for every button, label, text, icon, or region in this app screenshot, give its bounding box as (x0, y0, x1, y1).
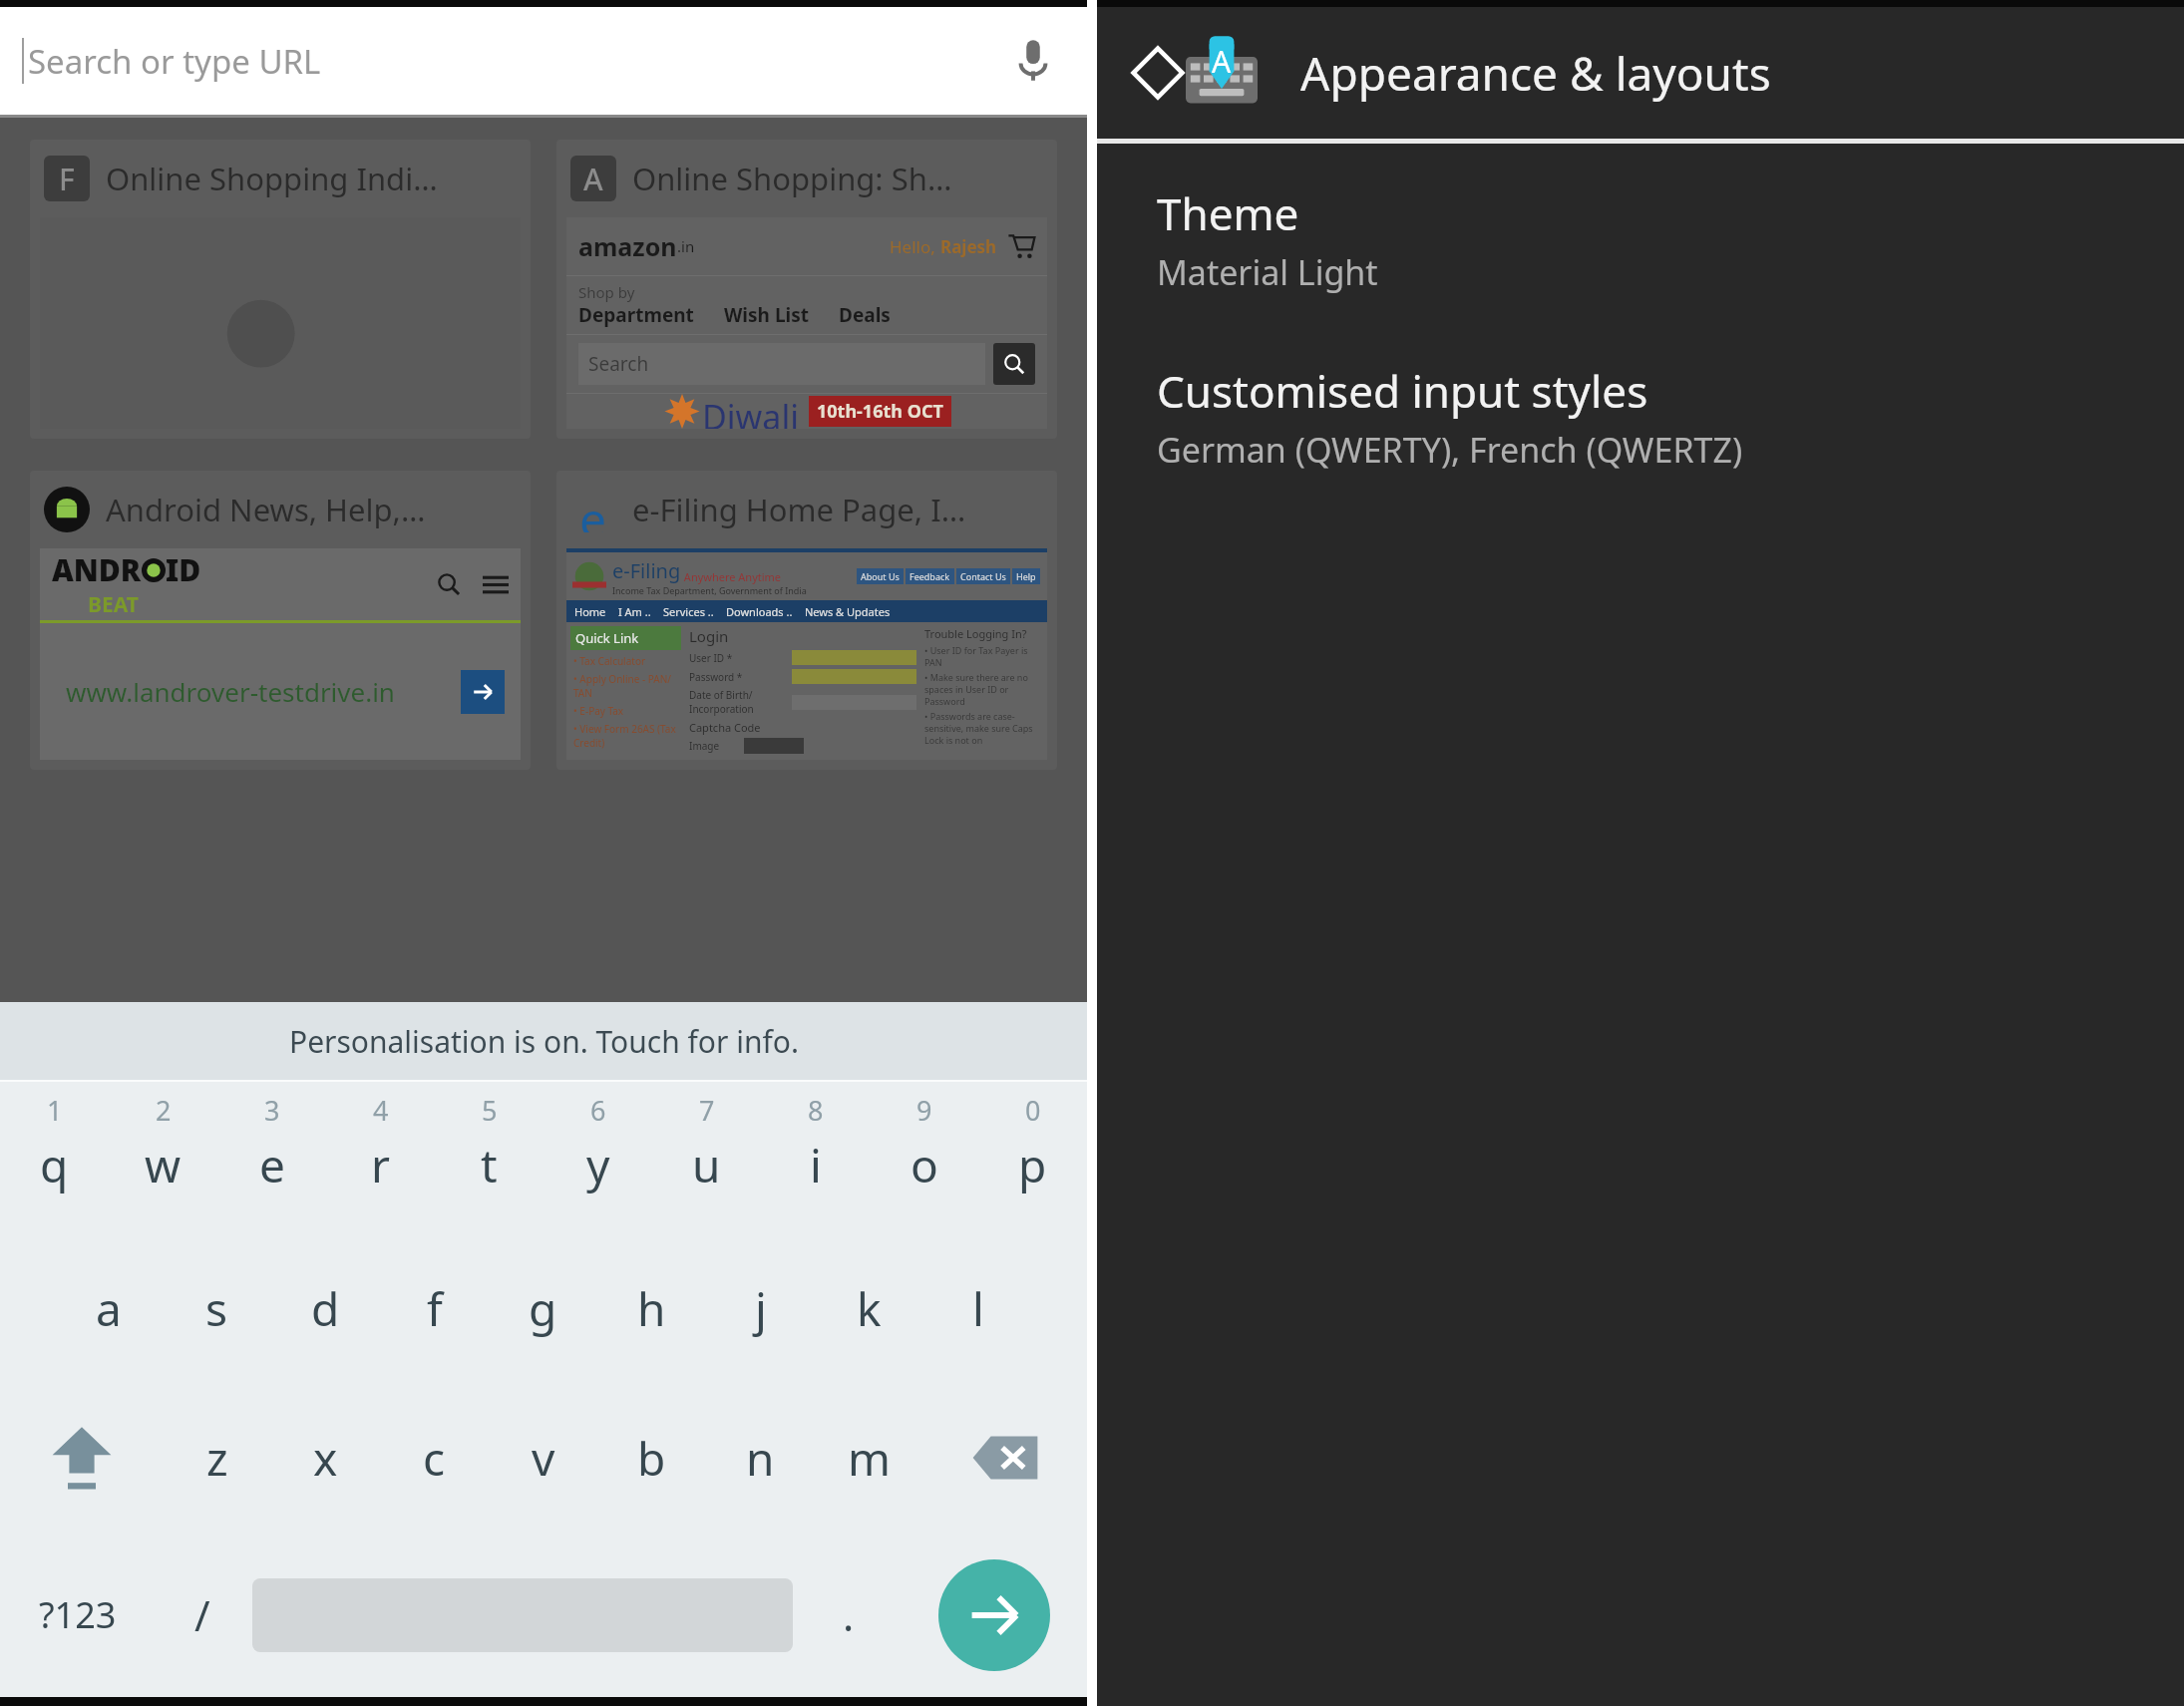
staticText: e-Filing (612, 557, 681, 584)
staticText: ?123 (39, 1590, 117, 1639)
button[interactable]: A (556, 140, 1057, 439)
button[interactable]: 7 (652, 1082, 761, 1233)
button[interactable]: / (156, 1533, 248, 1697)
staticText: Customised input styles (1157, 361, 1648, 421)
staticText: m (848, 1427, 892, 1490)
staticText: 8 (808, 1092, 824, 1129)
staticText: e-Filing Home Page, I… (632, 489, 966, 530)
button[interactable]: 6 (544, 1082, 652, 1233)
button[interactable]: v (489, 1383, 597, 1533)
button[interactable]: Android News, Help,… (30, 471, 531, 770)
button[interactable]: Voice search (1001, 29, 1065, 93)
staticText: 6 (590, 1092, 606, 1129)
button[interactable]: Customised input styles (1097, 355, 2184, 481)
staticText: 4 (373, 1092, 389, 1129)
button[interactable]: b (597, 1383, 706, 1533)
button[interactable]: 8 (761, 1082, 870, 1233)
staticText: Online Shopping Indi… (106, 158, 438, 199)
staticText: Android News, Help,… (106, 489, 426, 530)
button[interactable]: c (380, 1383, 489, 1533)
button[interactable]: z (163, 1383, 271, 1533)
staticText: Trouble Logging In? (924, 626, 1027, 641)
button[interactable]: 9 (870, 1082, 978, 1233)
button[interactable]: d (271, 1233, 380, 1383)
staticText: p (1018, 1134, 1047, 1196)
staticText: w (145, 1134, 182, 1196)
button[interactable]: g (489, 1233, 597, 1383)
button[interactable]: 4 (326, 1082, 435, 1233)
staticText: Anywhere Anytime (681, 569, 782, 584)
staticText: About Us (861, 570, 900, 582)
staticText: y (586, 1134, 610, 1196)
staticText: BEAT (88, 590, 139, 619)
staticText: Wish List (724, 302, 809, 328)
button[interactable]: F (30, 140, 531, 439)
staticText: Material Light (1157, 249, 1378, 295)
staticText: A (1212, 41, 1232, 82)
staticText: Hello, (890, 235, 940, 258)
staticText: i (810, 1134, 822, 1196)
button[interactable]: h (597, 1233, 706, 1383)
staticText: r (371, 1134, 390, 1196)
button[interactable]: Search or type URL (0, 7, 1087, 115)
button[interactable]: 0 (978, 1082, 1087, 1233)
button[interactable]: e (556, 471, 1057, 770)
button[interactable]: k (815, 1233, 923, 1383)
staticText: 2 (156, 1092, 172, 1129)
staticText: Income Tax Department, Government of Ind… (612, 584, 807, 596)
staticText: z (206, 1427, 228, 1490)
staticText: Theme (1157, 183, 1299, 243)
button[interactable]: Shift (0, 1383, 163, 1533)
staticText: Personalisation is on. Touch for info. (289, 1021, 799, 1062)
staticText: Contact Us (960, 570, 1006, 582)
button[interactable]: . (797, 1533, 901, 1697)
staticText: l (972, 1277, 984, 1340)
staticText: Diwali (702, 394, 799, 429)
staticText: q (40, 1134, 69, 1196)
staticText: • E-Pay Tax (573, 704, 624, 718)
staticText: News & Updates (805, 604, 891, 619)
staticText: x (313, 1427, 338, 1490)
staticText: Shop by (578, 282, 635, 302)
button[interactable]: Personalisation is on. Touch for info. (0, 1002, 1087, 1080)
staticText: ANDR (52, 549, 142, 590)
button[interactable]: 2 (109, 1082, 217, 1233)
staticText: Login (689, 626, 729, 646)
staticText: v (532, 1427, 555, 1490)
staticText: . (843, 1586, 855, 1643)
button[interactable]: 5 (435, 1082, 544, 1233)
staticText: o (910, 1134, 938, 1196)
button[interactable]: j (706, 1233, 815, 1383)
button[interactable]: Space (252, 1578, 793, 1652)
staticText: Search or type URL (28, 39, 1001, 84)
button[interactable]: x (271, 1383, 380, 1533)
button[interactable]: Enter (938, 1559, 1050, 1671)
staticText: www.landrover-testdrive.in (66, 674, 395, 709)
staticText: g (529, 1277, 557, 1340)
staticText: Quick Link (575, 629, 639, 647)
button[interactable]: Theme (1097, 177, 2184, 303)
button[interactable]: n (706, 1383, 815, 1533)
staticText: c (423, 1427, 446, 1490)
button[interactable]: a (54, 1233, 163, 1383)
staticText: F (59, 159, 75, 199)
staticText: e (259, 1134, 285, 1196)
staticText: Deals (839, 302, 891, 328)
staticText: 10th-16th OCT (817, 399, 943, 424)
button[interactable]: Back (1115, 30, 1201, 116)
button[interactable]: s (163, 1233, 271, 1383)
staticText: • Passwords are case-sensitive, make sur… (924, 710, 1043, 746)
button[interactable]: m (815, 1383, 923, 1533)
button[interactable]: f (380, 1233, 489, 1383)
button[interactable]: 3 (217, 1082, 326, 1233)
staticText: Search (588, 351, 649, 377)
staticText: Date of Birth/Incorporation (689, 688, 792, 716)
button[interactable]: ?123 (0, 1533, 156, 1697)
button[interactable]: 1 (0, 1082, 109, 1233)
button[interactable]: l (923, 1233, 1032, 1383)
staticText: Help (1016, 570, 1036, 582)
staticText: • Make sure there are no spaces in User … (924, 671, 1043, 707)
button[interactable]: Backspace (923, 1383, 1087, 1533)
staticText: Feedback (910, 570, 950, 582)
staticText: 7 (699, 1092, 715, 1129)
